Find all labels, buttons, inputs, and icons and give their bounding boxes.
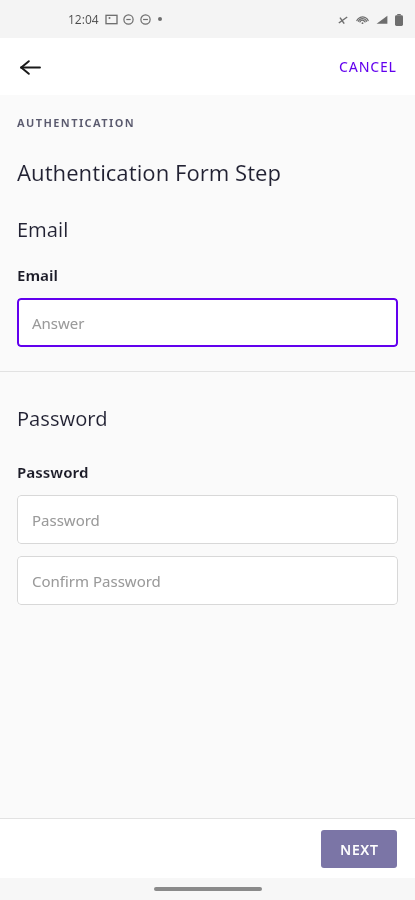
staticText: AUTHENTICATION	[17, 115, 136, 130]
staticText: Password	[32, 510, 100, 530]
staticText: CANCEL	[339, 57, 397, 76]
button[interactable]: NEXT	[321, 830, 397, 868]
button[interactable]: CANCEL	[327, 49, 409, 84]
button[interactable]: Back	[10, 47, 50, 87]
staticText: NEXT	[340, 840, 379, 859]
staticText: Confirm Password	[32, 571, 161, 591]
staticText: Password	[17, 462, 89, 482]
button[interactable]: Answer	[17, 298, 398, 347]
button[interactable]: Confirm Password	[17, 556, 398, 605]
staticText: Answer	[32, 313, 85, 333]
staticText: Email	[17, 265, 58, 285]
staticText: Password	[17, 405, 108, 432]
button[interactable]: Password	[17, 495, 398, 544]
staticText: Email	[17, 216, 69, 243]
staticText: Authentication Form Step	[17, 157, 282, 187]
staticText: 12:04	[68, 11, 99, 27]
